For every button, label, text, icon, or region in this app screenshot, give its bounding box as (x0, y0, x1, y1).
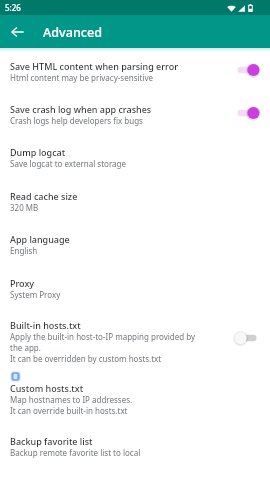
staticText: Save crash log when app crashes (10, 103, 152, 115)
button[interactable]: Built-in hosts.txt (0, 308, 270, 366)
staticText: Backup favorite list (10, 435, 93, 447)
staticText: It can override built-in hosts.txt (10, 405, 128, 416)
button[interactable]: Read cache size (0, 178, 270, 221)
staticText: 5:26 (5, 2, 21, 13)
staticText: Save logcat to external storage (10, 158, 126, 169)
button[interactable]: Save crash log when app crashes (230, 100, 264, 126)
staticText: Advanced (43, 24, 103, 41)
staticText: App language (10, 233, 70, 245)
button[interactable]: Save HTML content when parsing error (230, 57, 264, 83)
staticText: Read cache size (10, 190, 78, 202)
button[interactable]: Proxy (0, 265, 270, 308)
button[interactable]: Backup favorite list (0, 425, 270, 468)
staticText: Map hostnames to IP addresses. (10, 394, 133, 405)
staticText: Save HTML content when parsing error (10, 60, 179, 72)
staticText: English (10, 245, 38, 256)
staticText: It can be overridden by custom hosts.txt (10, 353, 162, 364)
button[interactable]: Save HTML content when parsing error (0, 48, 270, 91)
staticText: Html content may be privacy-sensitive (10, 72, 154, 83)
button[interactable]: Back (1, 15, 34, 48)
staticText: Backup remote favorite list to local (10, 447, 141, 458)
button[interactable]: Built-in hosts.txt (230, 325, 264, 351)
button[interactable]: Dump logcat (0, 134, 270, 178)
staticText: Dump logcat (10, 146, 66, 158)
button[interactable]: Save crash log when app crashes (0, 91, 270, 134)
staticText: Apply the built-in host-to-IP mapping pr… (10, 331, 202, 353)
staticText: System Proxy (10, 289, 61, 300)
button[interactable]: Custom hosts.txt (0, 366, 270, 425)
staticText: Custom hosts.txt (10, 382, 84, 394)
staticText: Built-in hosts.txt (10, 319, 81, 331)
staticText: 320 MB (10, 202, 39, 213)
staticText: Crash logs help developers fix bugs (10, 115, 143, 126)
button[interactable]: App language (0, 221, 270, 265)
staticText: Proxy (10, 277, 35, 289)
